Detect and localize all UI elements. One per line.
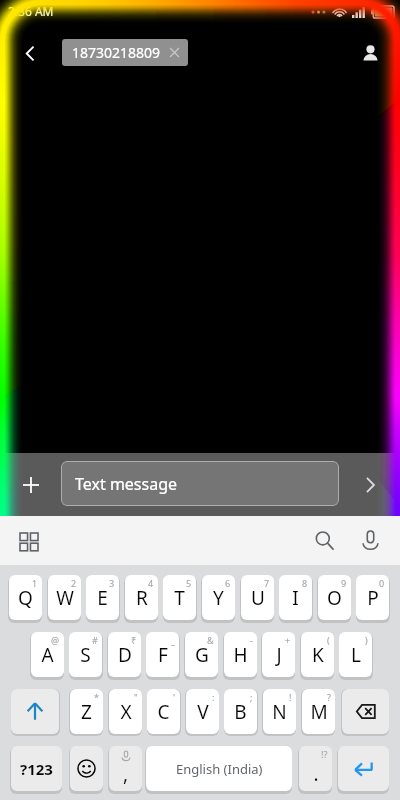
staticText: U: [251, 585, 265, 611]
staticText: K: [312, 642, 324, 668]
button[interactable]: J: [262, 632, 295, 677]
staticText: D: [118, 642, 132, 668]
staticText: ': [173, 691, 176, 703]
staticText: !: [289, 691, 292, 703]
staticText: (: [327, 634, 330, 646]
staticText: R: [136, 585, 148, 611]
button[interactable]: A: [31, 632, 64, 677]
staticText: A: [41, 642, 54, 668]
button[interactable]: R: [125, 575, 158, 620]
staticText: J: [276, 642, 282, 668]
staticText: O: [327, 585, 342, 611]
button[interactable]: O: [318, 575, 351, 620]
staticText: C: [157, 699, 170, 725]
button[interactable]: N: [263, 689, 296, 734]
button[interactable]: Search: [306, 522, 343, 559]
staticText: L: [351, 642, 361, 668]
staticText: 0: [379, 577, 385, 589]
button[interactable]: English (India): [146, 746, 292, 791]
staticText: B: [234, 699, 247, 725]
button[interactable]: Add attachment: [11, 465, 51, 505]
staticText: 4: [148, 577, 154, 589]
staticText: E: [97, 585, 108, 611]
staticText: 18730218809: [72, 43, 161, 62]
staticText: G: [195, 642, 209, 668]
button[interactable]: I: [279, 575, 312, 620]
staticText: _: [171, 634, 175, 646]
button[interactable]: U: [241, 575, 274, 620]
staticText: 5: [186, 577, 192, 589]
staticText: 6: [225, 577, 231, 589]
button[interactable]: T: [163, 575, 196, 620]
staticText: 2: [71, 577, 77, 589]
staticText: M: [310, 699, 328, 725]
staticText: X: [120, 699, 132, 725]
button[interactable]: Send: [349, 464, 391, 506]
button[interactable]: L: [339, 632, 372, 677]
button[interactable]: E: [86, 575, 119, 620]
button[interactable]: K: [301, 632, 334, 677]
button[interactable]: B: [224, 689, 257, 734]
button[interactable]: G: [185, 632, 218, 677]
button[interactable]: C: [147, 689, 180, 734]
button[interactable]: Voice input: [352, 522, 389, 559]
staticText: 7: [264, 577, 270, 589]
button[interactable]: X: [109, 689, 142, 734]
button[interactable]: Shift: [11, 689, 59, 734]
button[interactable]: Y: [202, 575, 235, 620]
button[interactable]: .: [299, 746, 332, 791]
staticText: 1: [32, 577, 38, 589]
staticText: Z: [81, 699, 92, 725]
button[interactable]: 18730218809: [62, 39, 188, 66]
staticText: P: [367, 585, 379, 611]
button[interactable]: Back: [10, 33, 50, 73]
button[interactable]: H: [224, 632, 257, 677]
staticText: T: [174, 585, 185, 611]
staticText: ,: [123, 761, 129, 787]
button[interactable]: F: [146, 632, 179, 677]
staticText: +: [285, 634, 291, 646]
button[interactable]: W: [48, 575, 81, 620]
staticText: Q: [18, 585, 33, 611]
button[interactable]: Enter: [338, 746, 389, 791]
staticText: S: [80, 642, 91, 668]
staticText: &: [207, 634, 214, 646]
staticText: V: [197, 699, 209, 725]
staticText: 9: [341, 577, 347, 589]
staticText: 2:36 AM: [8, 3, 54, 19]
staticText: 8: [302, 577, 308, 589]
button[interactable]: M: [302, 689, 335, 734]
button[interactable]: Text message: [61, 461, 339, 506]
button[interactable]: S: [69, 632, 102, 677]
button[interactable]: Backspace: [342, 689, 389, 734]
button[interactable]: Q: [9, 575, 42, 620]
staticText: Text message: [75, 473, 178, 495]
staticText: 3: [109, 577, 115, 589]
button[interactable]: P: [356, 575, 389, 620]
staticText: English (India): [176, 760, 263, 778]
button[interactable]: Symbols: [11, 746, 62, 791]
staticText: N: [272, 699, 287, 725]
staticText: I: [292, 585, 299, 611]
staticText: .: [313, 761, 319, 787]
staticText: ): [365, 634, 368, 646]
staticText: ;: [250, 691, 253, 703]
staticText: *: [94, 691, 99, 703]
staticText: ₹: [131, 634, 137, 646]
staticText: H: [233, 642, 248, 668]
staticText: :: [212, 691, 215, 703]
button[interactable]: D: [108, 632, 141, 677]
button[interactable]: Emoji: [70, 746, 103, 791]
button[interactable]: Z: [70, 689, 103, 734]
button[interactable]: V: [186, 689, 219, 734]
staticText: ": [134, 691, 138, 703]
button[interactable]: Keyboard menu: [11, 523, 47, 559]
staticText: -: [250, 634, 253, 646]
button[interactable]: Contact details: [350, 33, 390, 73]
staticText: !?: [321, 748, 328, 760]
staticText: W: [56, 585, 74, 611]
staticText: ?123: [20, 759, 53, 779]
staticText: #: [92, 634, 98, 646]
button[interactable]: ,: [109, 746, 142, 791]
staticText: F: [158, 642, 168, 668]
